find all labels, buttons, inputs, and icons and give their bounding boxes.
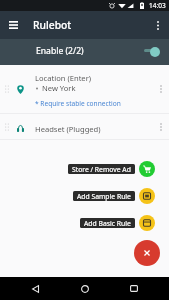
button[interactable]: Close menu: [134, 240, 160, 266]
staticText: Add Basic Rule: [84, 219, 131, 228]
button[interactable]: Add Sample Rule: [73, 188, 155, 204]
button[interactable]: Headset (Plugged): [0, 114, 169, 139]
button[interactable]: Recent apps: [122, 277, 146, 300]
button[interactable]: Back: [23, 277, 47, 300]
staticText: 14:03: [149, 1, 166, 10]
staticText: Rulebot: [33, 18, 72, 32]
staticText: Headset (Plugged): [35, 124, 101, 134]
staticText: Add Sample Rule: [77, 192, 131, 201]
staticText: Store / Remove Ad: [72, 165, 131, 174]
staticText: Enable (2/2): [36, 45, 84, 57]
button[interactable]: Enable (2/2): [0, 39, 169, 65]
button[interactable]: Rule options: [153, 79, 169, 99]
staticText: * Require stable connection: [35, 99, 121, 108]
button[interactable]: More options: [147, 11, 169, 39]
staticText: New York: [42, 83, 76, 93]
button[interactable]: Add Basic Rule: [80, 215, 155, 231]
button[interactable]: Rule options: [153, 117, 169, 137]
staticText: Location (Enter): [35, 73, 92, 83]
button[interactable]: Store / Remove Ad: [68, 161, 155, 177]
button[interactable]: Location (Enter): [0, 65, 169, 113]
button[interactable]: Home: [73, 277, 97, 300]
button[interactable]: Open navigation drawer: [0, 11, 27, 39]
